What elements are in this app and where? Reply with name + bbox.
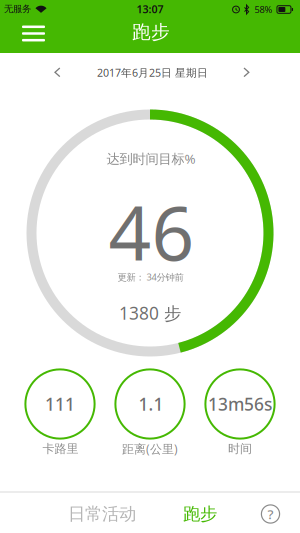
button[interactable]: 跑步 (160, 493, 240, 533)
button[interactable]: 日常活动 (47, 493, 157, 533)
staticText: 日常活动 (68, 503, 136, 525)
staticText: 跑步 (183, 503, 217, 525)
staticText: 46 (108, 182, 194, 281)
staticText: 1380 步 (119, 301, 181, 324)
staticText: 达到时间目标% (106, 150, 195, 167)
button[interactable]: Menu (13, 17, 53, 49)
staticText: 时间 (228, 441, 252, 456)
staticText: 13:07 (136, 2, 163, 16)
button[interactable]: Next day (232, 59, 260, 85)
staticText: 111 (45, 392, 75, 415)
staticText: 1.1 (138, 392, 163, 415)
staticText: 跑步 (132, 20, 170, 43)
staticText: 距离(公里) (122, 441, 178, 457)
staticText: 卡路里 (42, 441, 78, 456)
staticText: ? (267, 505, 273, 523)
staticText: 2017年6月25日 星期日 (97, 65, 208, 80)
staticText: 无服务 (4, 3, 31, 15)
button[interactable]: Previous day (43, 59, 71, 85)
staticText: 58% (254, 3, 272, 16)
staticText: 更新： 34分钟前 (117, 271, 183, 283)
button[interactable]: Help (260, 504, 280, 524)
staticText: 13m56s (208, 392, 272, 415)
